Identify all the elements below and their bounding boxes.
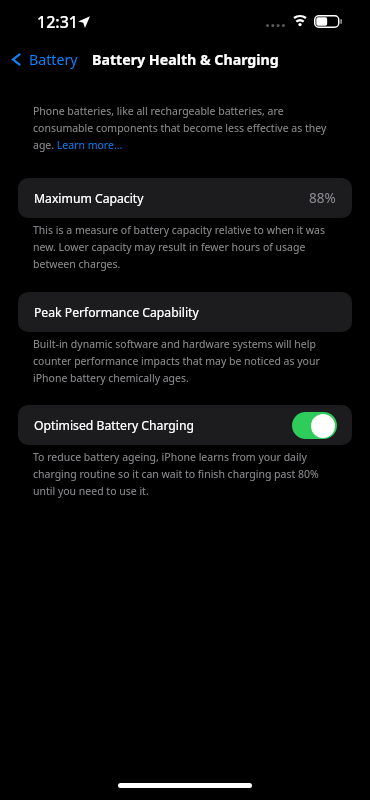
button[interactable]: Phone batteries, like all rechargeable b… bbox=[33, 101, 338, 152]
staticText: 12:31 bbox=[37, 11, 78, 33]
staticText: To reduce battery ageing, iPhone learns … bbox=[33, 447, 338, 498]
button[interactable]: Battery bbox=[0, 39, 86, 79]
staticText: Built-in dynamic software and hardware s… bbox=[33, 334, 338, 385]
other: Cellular signal bbox=[266, 23, 286, 28]
staticText: Optimised Battery Charging bbox=[34, 417, 194, 434]
staticText: Maximum Capacity bbox=[34, 190, 144, 207]
button[interactable]: Optimised Battery Charging bbox=[18, 405, 352, 445]
button[interactable]: Maximum Capacity bbox=[18, 178, 352, 218]
staticText: Peak Performance Capability bbox=[34, 304, 199, 321]
staticText: 88% bbox=[309, 189, 336, 207]
staticText: Phone batteries, like all rechargeable b… bbox=[33, 101, 338, 152]
other: Wi-Fi bbox=[291, 15, 309, 28]
staticText: Battery Health & Charging bbox=[92, 50, 279, 69]
other: Battery 50 percent bbox=[314, 15, 342, 28]
button[interactable]: Peak Performance Capability bbox=[18, 292, 352, 332]
staticText: This is a measure of battery capacity re… bbox=[33, 220, 338, 271]
other: Location services active bbox=[78, 16, 90, 28]
button[interactable]: Optimised Battery Charging, on bbox=[292, 412, 337, 439]
staticText: Battery bbox=[29, 50, 78, 69]
